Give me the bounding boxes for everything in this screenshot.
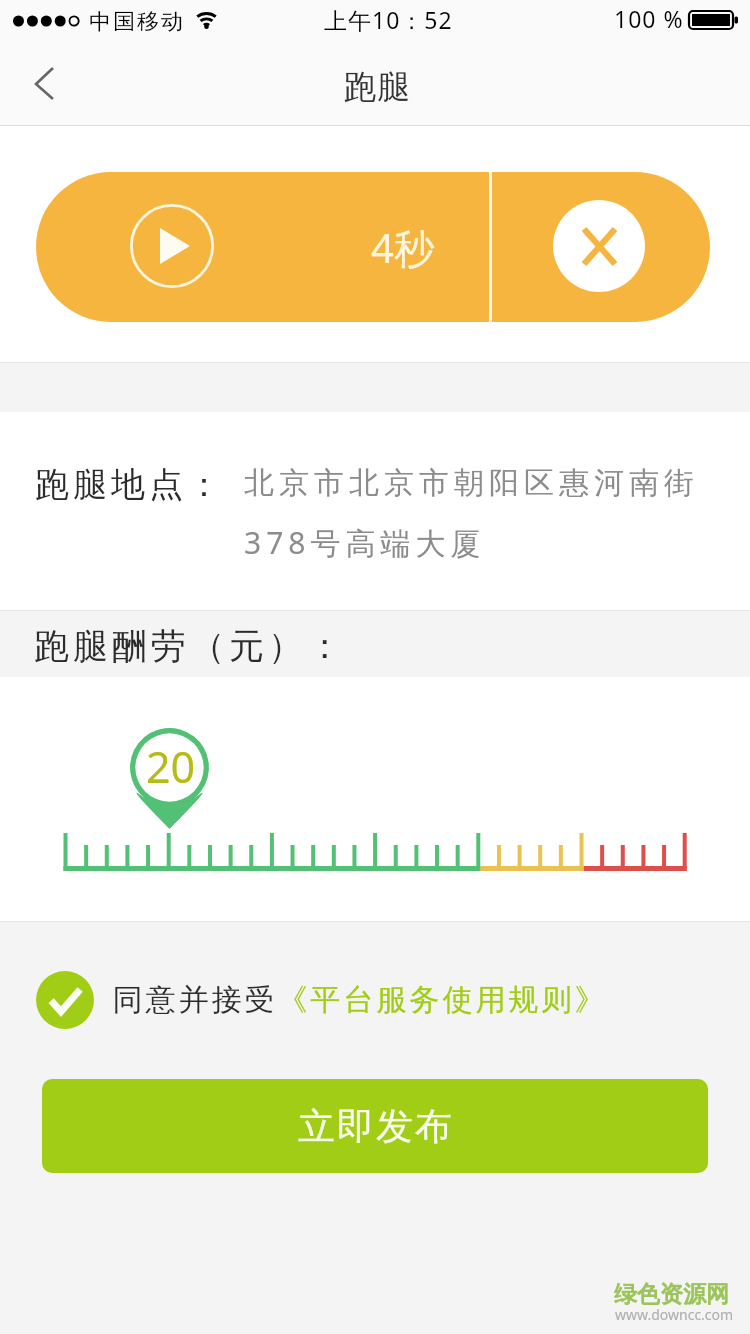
staticText: 100 % bbox=[614, 3, 684, 34]
button[interactable]: Back bbox=[0, 48, 88, 126]
staticText: 跑腿 bbox=[343, 66, 411, 108]
button[interactable]: 同意并接受 bbox=[36, 971, 606, 1029]
staticText: 北京市北京市朝阳区惠河南街378号高端大厦 bbox=[244, 464, 702, 563]
staticText: 《平台服务使用规则》 bbox=[276, 981, 606, 1019]
staticText: 绿色资源网 bbox=[614, 1280, 729, 1309]
staticText: 跑腿酬劳（元）： bbox=[32, 624, 344, 668]
button[interactable]: 立即发布 bbox=[42, 1079, 708, 1173]
button[interactable]: Cancel recording bbox=[553, 200, 645, 292]
button[interactable]: Play voice bbox=[130, 204, 214, 288]
staticText: 中国移动 bbox=[88, 8, 184, 36]
staticText: 4秒 bbox=[371, 220, 434, 275]
staticText: 同意并接受 bbox=[111, 981, 276, 1019]
staticText: 立即发布 bbox=[297, 1103, 453, 1150]
staticText: 跑腿地点： bbox=[33, 463, 223, 506]
staticText: www.downcc.com bbox=[615, 1305, 734, 1324]
staticText: 20 bbox=[146, 737, 196, 796]
staticText: 上午10：52 bbox=[324, 4, 453, 35]
